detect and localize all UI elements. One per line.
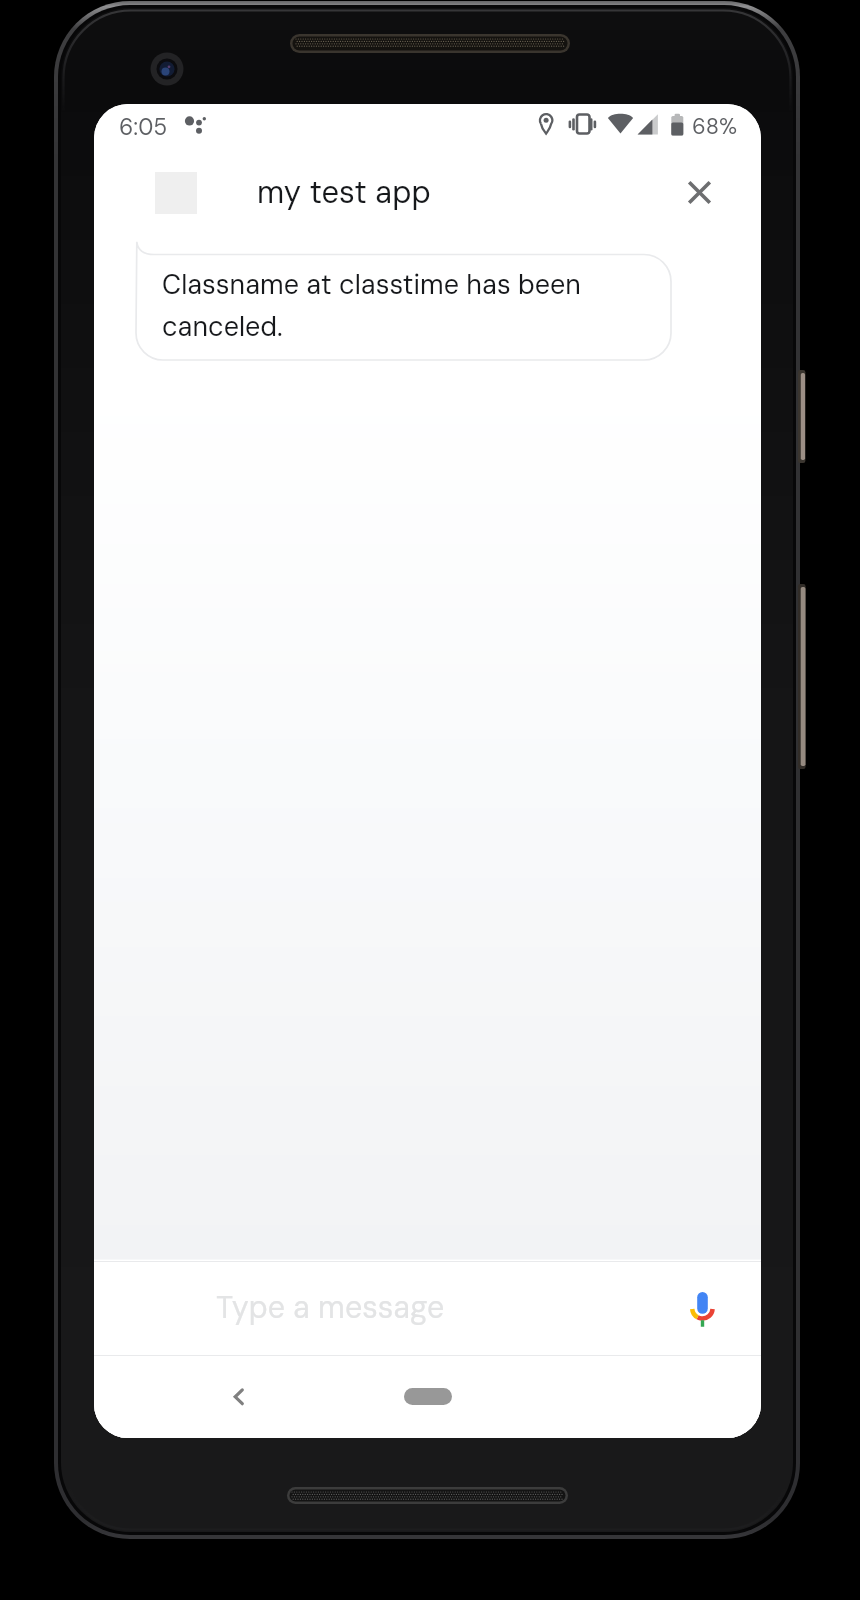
- staticText: my test app: [257, 172, 431, 212]
- button[interactable]: Classname at classtime has been canceled…: [136, 241, 671, 360]
- button[interactable]: Home: [404, 1388, 452, 1405]
- staticText: Classname at classtime has been canceled…: [162, 267, 592, 344]
- button[interactable]: Close: [670, 170, 718, 218]
- button[interactable]: Type a message: [94, 1262, 761, 1355]
- button[interactable]: Voice input: [678, 1280, 726, 1336]
- button[interactable]: Back: [214, 1368, 260, 1414]
- staticText: Type a message: [216, 1288, 445, 1328]
- staticText: 6:05: [119, 112, 168, 142]
- staticText: 68%: [692, 112, 738, 141]
